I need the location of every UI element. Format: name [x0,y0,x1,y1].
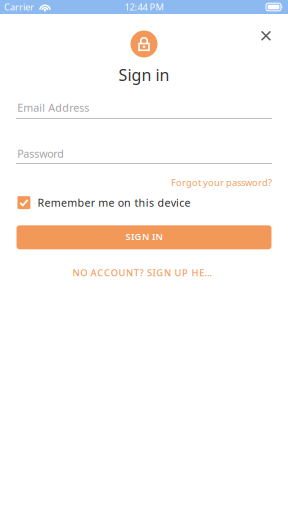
staticText: Email Address [17,100,89,115]
staticText: 12:44 PM [124,1,163,13]
staticText: Forgot your password? [171,176,272,189]
staticText: NO ACCOUNT? SIGN UP HERE [72,266,217,279]
button[interactable]: NO ACCOUNT? SIGN UP HERE [72,266,217,279]
button[interactable]: SIGN IN [16,225,271,249]
staticText: Sign in [118,64,169,85]
staticText: Carrier [4,1,34,13]
staticText: SIGN IN [125,230,162,242]
staticText: Password [17,146,64,161]
staticText: Remember me on this device [37,195,190,210]
button[interactable]: Remember me on this device [17,196,192,210]
button[interactable]: Close [251,21,281,51]
button[interactable]: Forgot your password? [162,174,272,190]
